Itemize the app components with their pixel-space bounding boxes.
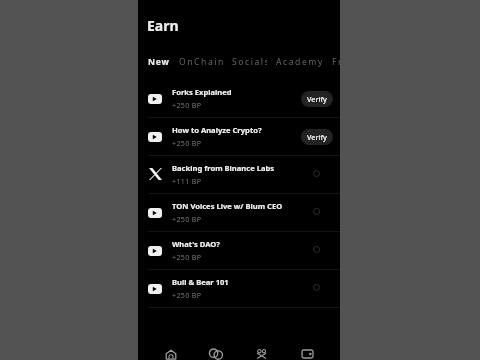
- button[interactable]: Bull & Bear 101: [138, 270, 340, 307]
- button[interactable]: Pending: [308, 281, 324, 297]
- staticText: Fr: [332, 56, 340, 68]
- button[interactable]: Verify: [301, 129, 333, 145]
- button[interactable]: Wallet: [284, 347, 330, 360]
- staticText: +250 BP: [172, 100, 202, 110]
- button[interactable]: What's DAO?: [138, 232, 340, 269]
- staticText: +250 BP: [172, 252, 202, 262]
- button[interactable]: Backing from Binance Labs: [138, 156, 340, 193]
- button[interactable]: Pending: [308, 205, 324, 221]
- button[interactable]: Fr: [332, 55, 340, 69]
- button[interactable]: Socials: [232, 55, 267, 69]
- staticText: Verify: [307, 132, 327, 142]
- staticText: What's DAO?: [172, 239, 220, 249]
- button[interactable]: Friends: [238, 347, 284, 360]
- staticText: New: [148, 56, 169, 68]
- staticText: +111 BP: [172, 176, 202, 186]
- staticText: How to Analyze Crypto?: [172, 125, 262, 135]
- staticText: Bull & Bear 101: [172, 277, 229, 287]
- button[interactable]: Home: [148, 347, 193, 360]
- button[interactable]: Verify: [301, 91, 333, 107]
- staticText: +250 BP: [172, 214, 202, 224]
- button[interactable]: OnChain: [179, 55, 224, 69]
- staticText: Socials: [232, 56, 267, 68]
- staticText: +250 BP: [172, 290, 202, 300]
- staticText: Forks Explained: [172, 87, 232, 97]
- button[interactable]: Academy: [276, 55, 323, 69]
- button[interactable]: New: [148, 55, 169, 69]
- staticText: Earn: [147, 16, 179, 35]
- staticText: Verify: [307, 94, 327, 104]
- staticText: Academy: [276, 56, 323, 68]
- staticText: TON Voices Live w/ Blum CEO: [172, 201, 283, 211]
- staticText: +250 BP: [172, 138, 202, 148]
- button[interactable]: How to Analyze Crypto?: [138, 118, 340, 155]
- button[interactable]: Tokens: [193, 347, 238, 360]
- button[interactable]: TON Voices Live w/ Blum CEO: [138, 194, 340, 231]
- button[interactable]: Pending: [308, 243, 324, 259]
- staticText: Backing from Binance Labs: [172, 163, 275, 173]
- button[interactable]: Forks Explained: [138, 80, 340, 117]
- staticText: OnChain: [179, 56, 224, 68]
- button[interactable]: Pending: [308, 167, 324, 183]
